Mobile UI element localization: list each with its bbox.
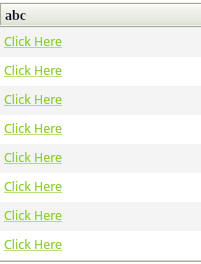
staticText: Click Here xyxy=(4,178,63,195)
button[interactable]: Click Here xyxy=(4,62,63,79)
button[interactable]: Click Here xyxy=(4,236,63,253)
staticText: Click Here xyxy=(4,33,63,50)
button[interactable]: Click Here xyxy=(4,120,63,137)
staticText: abc xyxy=(5,8,26,24)
button[interactable]: Click Here xyxy=(4,178,63,195)
button[interactable]: Click Here xyxy=(4,149,63,166)
staticText: Click Here xyxy=(4,149,63,166)
button[interactable]: Click Here xyxy=(4,33,63,50)
staticText: Click Here xyxy=(4,62,63,79)
staticText: Click Here xyxy=(4,91,63,108)
button[interactable]: Click Here xyxy=(4,207,63,224)
staticText: Click Here xyxy=(4,120,63,137)
staticText: Click Here xyxy=(4,207,63,224)
button[interactable]: Click Here xyxy=(4,91,63,108)
staticText: Click Here xyxy=(4,236,63,253)
